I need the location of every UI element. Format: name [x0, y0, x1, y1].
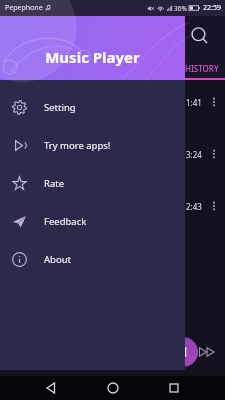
- button[interactable]: Home: [103, 378, 123, 398]
- button[interactable]: More options: [208, 200, 220, 212]
- button[interactable]: Try more apps!: [0, 126, 185, 164]
- staticText: 2:43: [186, 201, 202, 212]
- button[interactable]: Rate: [0, 164, 185, 202]
- button[interactable]: About: [0, 240, 185, 278]
- button[interactable]: 3:24: [0, 132, 225, 176]
- staticText: 1:41: [186, 97, 202, 108]
- button[interactable]: Setting: [0, 88, 185, 126]
- staticText: 36%: [174, 4, 187, 13]
- button[interactable]: Next: [198, 343, 216, 361]
- button[interactable]: More options: [208, 96, 220, 108]
- staticText: Music Player: [45, 47, 140, 67]
- button[interactable]: Music Player: [0, 16, 185, 370]
- button[interactable]: 2:43: [0, 184, 225, 228]
- staticText: HISTORY: [185, 63, 219, 74]
- staticText: About: [44, 253, 71, 266]
- button[interactable]: Feedback: [0, 202, 185, 240]
- button[interactable]: 1:41: [0, 80, 225, 124]
- staticText: Pepephone: [5, 3, 43, 13]
- button[interactable]: Search: [189, 25, 211, 47]
- button[interactable]: Back: [42, 378, 62, 398]
- staticText: Setting: [44, 101, 76, 114]
- staticText: Rate: [44, 177, 65, 190]
- staticText: Feedback: [44, 215, 87, 228]
- button[interactable]: Recent apps: [164, 378, 184, 398]
- staticText: 22:59: [203, 3, 221, 13]
- staticText: 3:24: [186, 149, 202, 160]
- button[interactable]: Pause: [168, 337, 198, 367]
- staticText: Try more apps!: [44, 139, 111, 152]
- button[interactable]: More options: [208, 148, 220, 160]
